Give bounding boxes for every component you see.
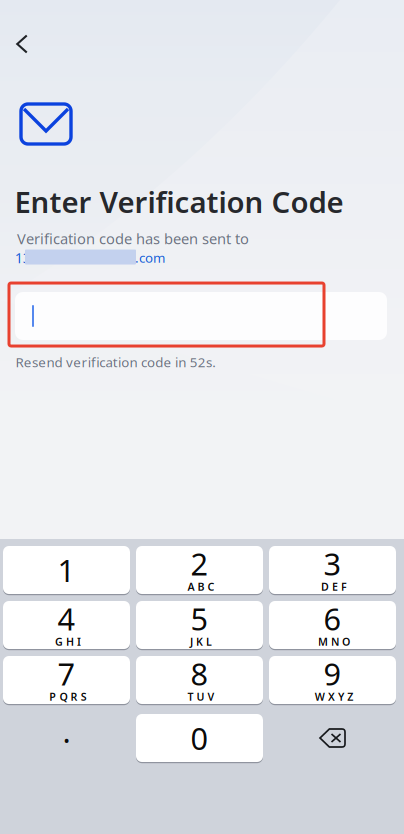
staticText: V — [208, 689, 215, 704]
staticText: Verification code has been sent to — [17, 229, 249, 248]
staticText: Y — [338, 689, 344, 704]
staticText: 7 — [57, 653, 75, 694]
staticText: 4 — [57, 598, 75, 639]
staticText: L — [206, 634, 212, 649]
staticText: X — [328, 689, 335, 704]
staticText: S — [81, 689, 87, 704]
staticText: Resend verification code in 52s. — [15, 353, 216, 371]
staticText: 3 — [323, 543, 341, 584]
button[interactable]: Back — [5, 22, 49, 66]
button[interactable]: 5 — [136, 598, 263, 651]
staticText: 6 — [323, 598, 341, 639]
staticText: 13 — [15, 248, 31, 267]
staticText: . — [62, 711, 70, 751]
button[interactable]: 2 — [136, 543, 263, 596]
staticText: 2 — [190, 543, 208, 584]
button[interactable]: 7 — [3, 653, 130, 706]
button[interactable]: 6 — [269, 598, 396, 651]
staticText: C — [208, 579, 215, 594]
staticText: J — [190, 634, 193, 649]
button[interactable]: Decimal point — [3, 711, 130, 764]
button[interactable]: 1 — [3, 543, 130, 596]
staticText: I — [77, 634, 81, 649]
button[interactable]: 9 — [269, 653, 396, 706]
staticText: .com — [135, 249, 165, 266]
staticText: N — [331, 634, 339, 649]
button[interactable]: 4 — [3, 598, 130, 651]
staticText: 1 — [57, 550, 75, 590]
button[interactable]: 8 — [136, 653, 263, 706]
staticText: Enter Verification Code — [15, 182, 344, 221]
staticText: 9 — [323, 653, 341, 694]
staticText: P — [49, 689, 56, 704]
button[interactable]: Delete — [269, 711, 396, 764]
staticText: 5 — [190, 598, 208, 639]
staticText: 8 — [190, 653, 208, 694]
staticText: K — [196, 634, 203, 649]
staticText: E — [332, 579, 338, 594]
staticText: B — [197, 579, 204, 594]
staticText: A — [187, 579, 194, 594]
staticText: D — [321, 579, 329, 594]
button[interactable]: 3 — [269, 543, 396, 596]
staticText: O — [342, 634, 350, 649]
staticText: R — [70, 689, 77, 704]
staticText: F — [341, 579, 347, 594]
button[interactable]: 0 — [136, 711, 263, 764]
staticText: H — [66, 634, 74, 649]
staticText: 0 — [190, 718, 208, 758]
staticText: M — [318, 634, 328, 649]
staticText: G — [55, 634, 63, 649]
staticText: Q — [59, 689, 67, 704]
staticText: W — [315, 689, 325, 704]
staticText: Z — [347, 689, 353, 704]
staticText: U — [196, 689, 204, 704]
staticText: T — [187, 689, 193, 704]
